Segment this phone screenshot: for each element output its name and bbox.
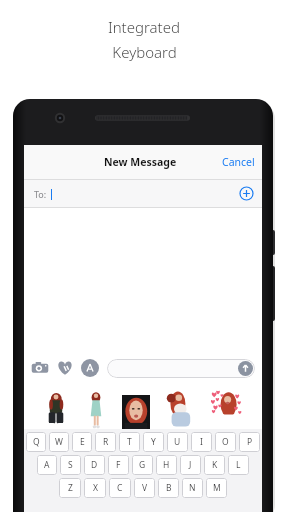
button[interactable]: M [206,478,227,498]
button[interactable]: Add contact [239,186,254,201]
staticText: J [189,459,192,471]
staticText: D [91,459,98,471]
staticText: W [55,436,63,448]
staticText: E [80,436,85,448]
button[interactable]: T [119,432,140,452]
button[interactable]: B [158,478,179,498]
button[interactable]: Digital Touch [56,359,74,377]
staticText: T [127,436,132,448]
button[interactable]: I [191,432,212,452]
staticText: To: [34,188,47,200]
button[interactable]: Sticker [165,389,195,429]
button[interactable]: A [37,455,57,475]
button[interactable]: Sticker [122,395,150,429]
staticText: A [44,459,50,471]
button[interactable]: Q [26,432,46,452]
button[interactable]: G [132,455,153,475]
button[interactable]: R [95,432,116,452]
button[interactable]: X [84,478,106,498]
staticText: N [189,482,196,494]
staticText: H [163,459,170,471]
staticText: I [200,436,203,448]
button[interactable]: Y [143,432,164,452]
staticText: K [212,459,218,471]
button[interactable]: Sticker [85,389,107,429]
button[interactable]: J [180,455,201,475]
button[interactable]: F [108,455,129,475]
button[interactable]: D [84,455,105,475]
staticText: O [222,436,229,448]
staticText: S [68,459,73,471]
button[interactable]: C [109,478,131,498]
staticText: M [213,482,221,494]
staticText: G [139,459,146,471]
button[interactable]: P [239,432,260,452]
staticText: Q [33,436,40,448]
staticText: U [174,436,181,448]
button[interactable]: To: [24,180,262,207]
button[interactable]: S [60,455,81,475]
button[interactable]: K [204,455,225,475]
button[interactable]: App Store [81,359,99,377]
staticText: Integrated [108,17,180,37]
staticText: Cancel [222,155,255,169]
button[interactable]: Cancel [215,148,262,176]
staticText: X [93,482,98,494]
button[interactable]: L [228,455,249,475]
staticText: Keyboard [112,42,177,62]
button[interactable]: Z [59,478,81,498]
staticText: F [116,459,121,471]
staticText: C [117,482,123,494]
staticText: P [247,436,253,448]
staticText: L [236,459,241,471]
button[interactable]: W [49,432,69,452]
button[interactable]: V [134,478,155,498]
staticText: B [166,482,172,494]
button[interactable]: Camera [31,359,49,377]
button[interactable]: O [215,432,236,452]
button[interactable]: H [156,455,177,475]
button[interactable]: Sticker [211,389,243,429]
staticText: R [103,436,109,448]
staticText: Y [151,436,156,448]
button[interactable]: Sticker [43,389,69,429]
button[interactable]: U [167,432,188,452]
staticText: New Message [104,155,177,169]
staticText: Z [68,482,73,494]
staticText: V [142,482,148,494]
button[interactable]: Send [107,359,255,378]
button[interactable]: Send [238,361,253,376]
button[interactable]: E [72,432,92,452]
button[interactable]: N [182,478,203,498]
